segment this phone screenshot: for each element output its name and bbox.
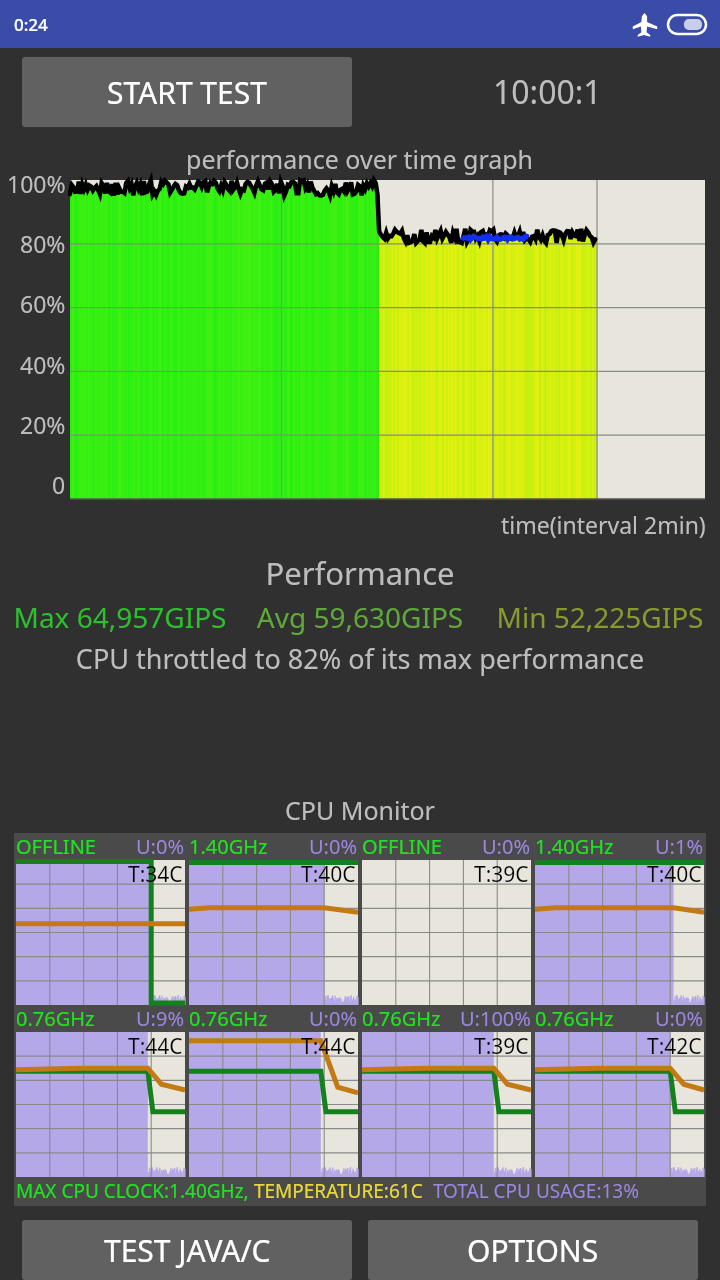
staticText: OPTIONS [467, 1230, 599, 1271]
staticText: 1.40GHz [189, 833, 268, 860]
staticText: T:42C [647, 1032, 702, 1061]
staticText: U:9% [136, 1005, 185, 1032]
staticText: U:0% [136, 833, 185, 860]
staticText: U:100% [460, 1005, 531, 1032]
staticText: START TEST [107, 72, 267, 113]
staticText: T:44C [128, 1032, 183, 1061]
staticText: T:40C [647, 860, 702, 889]
staticText: U:0% [309, 1005, 358, 1032]
staticText: T:40C [301, 860, 356, 889]
staticText: Performance [0, 552, 720, 594]
staticText: U:0% [655, 1005, 704, 1032]
staticText: OFFLINE [362, 833, 442, 860]
staticText: 60% [20, 288, 66, 319]
staticText: U:1% [655, 833, 704, 860]
button[interactable]: START TEST [22, 57, 352, 127]
staticText: Max 64,957GIPS [0, 598, 240, 636]
staticText: U:0% [482, 833, 531, 860]
button[interactable]: OPTIONS [368, 1220, 698, 1280]
staticText: TOTAL CPU USAGE:13% [423, 1178, 640, 1204]
staticText: T:34C [128, 860, 183, 889]
staticText: 20% [20, 409, 66, 440]
staticText: T:39C [474, 860, 529, 889]
staticText: OFFLINE [16, 833, 96, 860]
staticText: time(interval 2min) [501, 509, 706, 540]
staticText: U:0% [309, 833, 358, 860]
staticText: performance over time graph [186, 142, 534, 176]
staticText: MAX CPU CLOCK:1.40GHz, [16, 1178, 249, 1204]
staticText: CPU throttled to 82% of its max performa… [0, 640, 720, 677]
button[interactable]: TEST JAVA/C [22, 1220, 352, 1280]
staticText: 100% [7, 168, 66, 199]
staticText: 10:00:1 [493, 70, 602, 114]
staticText: TEMPERATURE:61C [249, 1178, 423, 1204]
staticText: 0.76GHz [189, 1005, 268, 1032]
staticText: 0.76GHz [535, 1005, 614, 1032]
staticText: TEST JAVA/C [104, 1230, 271, 1271]
staticText: 0:24 [14, 13, 48, 36]
staticText: Avg 59,630GIPS [240, 598, 480, 636]
staticText: T:44C [301, 1032, 356, 1061]
staticText: 0.76GHz [362, 1005, 441, 1032]
staticText: 40% [20, 349, 66, 380]
staticText: CPU Monitor [0, 793, 720, 827]
staticText: 0 [52, 469, 66, 500]
staticText: Min 52,225GIPS [480, 598, 720, 636]
staticText: 1.40GHz [535, 833, 614, 860]
staticText: 0.76GHz [16, 1005, 95, 1032]
staticText: 80% [20, 228, 66, 259]
staticText: T:39C [474, 1032, 529, 1061]
